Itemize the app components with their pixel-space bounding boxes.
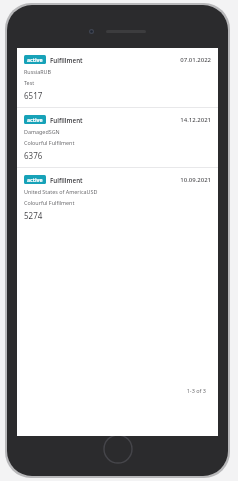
staticText: Fulfillment [50, 176, 83, 184]
staticText: 07.01.2022 [180, 56, 211, 64]
staticText: active [27, 116, 43, 123]
staticText: Test [24, 79, 35, 86]
staticText: United States of AmericaUSD [24, 188, 98, 195]
staticText: Fulfillment [50, 116, 83, 124]
staticText: RussiaRUB [24, 68, 52, 75]
staticText: 10.09.2021 [180, 176, 211, 184]
staticText: 6517 [24, 90, 43, 101]
button[interactable]: active [17, 48, 218, 107]
staticText: DamagedSGN [24, 128, 60, 135]
button[interactable]: active [17, 108, 218, 167]
button[interactable]: active [17, 168, 218, 227]
staticText: Fulfillment [50, 56, 83, 64]
staticText: active [27, 56, 43, 63]
staticText: 1-3 of 3 [186, 387, 206, 394]
staticText: 14.12.2021 [180, 116, 211, 124]
staticText: 6376 [24, 150, 43, 161]
staticText: 5274 [24, 210, 43, 221]
staticText: Colourful Fulfilment [24, 139, 75, 146]
staticText: active [27, 176, 43, 183]
staticText: Colourful Fulfilment [24, 199, 75, 206]
